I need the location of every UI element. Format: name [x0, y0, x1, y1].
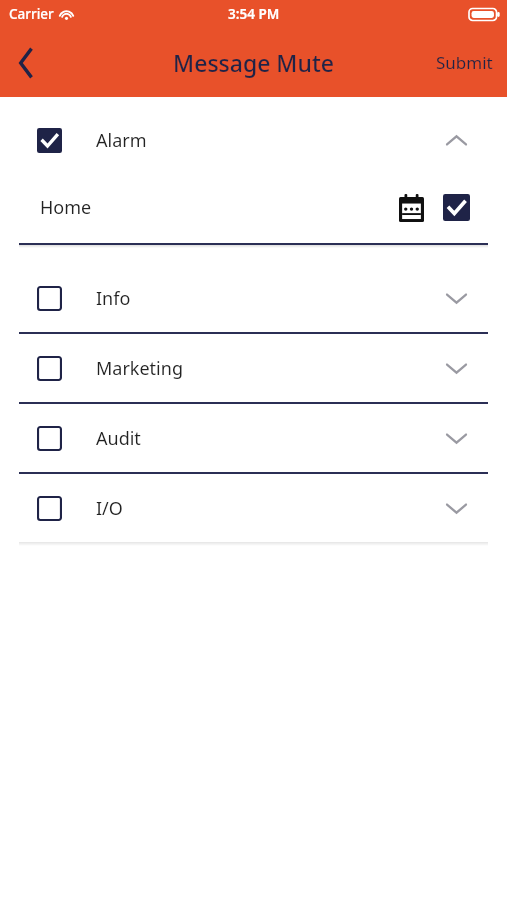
- button[interactable]: Alarm: [19, 108, 488, 172]
- staticText: I/O: [96, 496, 123, 521]
- button[interactable]: Home: [19, 172, 488, 243]
- staticText: Message Mute: [173, 47, 334, 78]
- staticText: Submit: [436, 51, 493, 74]
- button[interactable]: Back: [0, 37, 52, 89]
- staticText: Alarm: [96, 128, 147, 153]
- staticText: Info: [96, 286, 131, 311]
- staticText: Marketing: [96, 356, 183, 381]
- button[interactable]: Info: [19, 264, 488, 332]
- button[interactable]: Marketing: [19, 334, 488, 402]
- staticText: Audit: [96, 426, 141, 451]
- button[interactable]: Audit: [19, 404, 488, 472]
- button[interactable]: I/O: [19, 474, 488, 542]
- staticText: Carrier: [9, 5, 54, 23]
- button[interactable]: Home enabled: [443, 194, 470, 221]
- staticText: Home: [40, 195, 92, 220]
- button[interactable]: Submit: [422, 41, 507, 84]
- button[interactable]: Schedule: [395, 190, 428, 226]
- staticText: 3:54 PM: [228, 5, 280, 23]
